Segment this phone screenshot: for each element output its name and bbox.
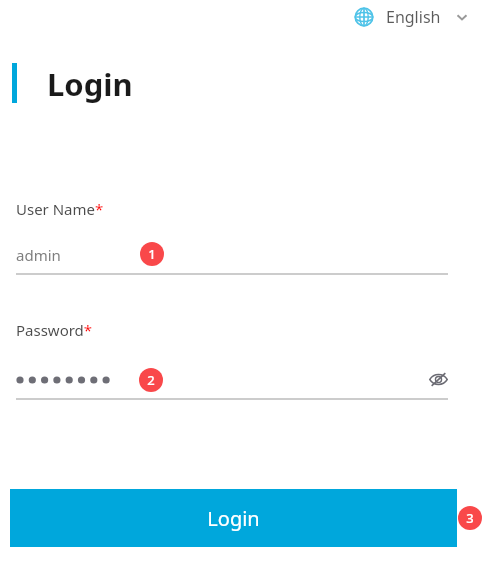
staticText: User Name* bbox=[16, 199, 104, 219]
staticText: 2 bbox=[147, 371, 155, 389]
button[interactable] bbox=[16, 362, 448, 398]
staticText: admin bbox=[16, 245, 61, 265]
staticText: Login bbox=[47, 63, 133, 105]
staticText: 3 bbox=[466, 509, 474, 527]
button[interactable]: Select language, English bbox=[352, 4, 471, 30]
staticText: 1 bbox=[148, 245, 156, 263]
button[interactable]: Login bbox=[10, 489, 457, 547]
button[interactable]: Show password bbox=[424, 366, 452, 392]
button[interactable]: admin bbox=[16, 236, 448, 274]
staticText: English bbox=[386, 6, 441, 28]
staticText: Password* bbox=[16, 320, 93, 340]
staticText: Login bbox=[207, 505, 260, 532]
